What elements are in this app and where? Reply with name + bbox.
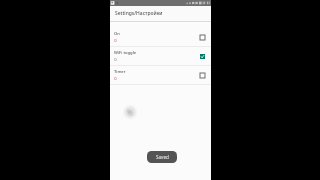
button[interactable]: Timer — [110, 66, 211, 84]
button[interactable]: WiFi toggle — [200, 54, 205, 59]
staticText: On — [114, 31, 120, 37]
staticText: o — [114, 56, 117, 62]
button[interactable]: On — [200, 35, 205, 40]
button[interactable]: On — [110, 28, 211, 46]
button[interactable]: Timer — [200, 73, 205, 78]
staticText: o — [114, 37, 117, 43]
staticText: Settings/Настройки — [115, 10, 163, 17]
button[interactable]: WiFi toggle — [110, 47, 211, 65]
staticText: WiFi toggle — [114, 50, 137, 56]
staticText: Timer — [114, 69, 126, 75]
staticText: Saved — [156, 154, 169, 160]
staticText: o — [114, 75, 117, 81]
